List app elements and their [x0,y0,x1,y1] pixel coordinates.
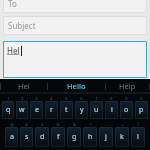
staticText: 1 [7,96,10,101]
staticText: Hel [7,45,20,56]
staticText: p [139,105,144,115]
button[interactable]: Key s [19,121,34,147]
staticText: + [121,122,124,127]
button[interactable]: Key f [50,121,66,147]
button[interactable]: Key i [104,95,119,119]
staticText: d [40,132,45,142]
staticText: t [65,105,68,115]
staticText: * [89,122,92,127]
staticText: & [73,122,76,127]
button[interactable]: Key r [44,95,59,119]
button[interactable]: Key y [74,95,89,119]
button[interactable]: To [3,0,147,13]
staticText: o [124,105,129,115]
staticText: w [19,105,25,115]
staticText: u [94,105,99,115]
staticText: 3 [35,96,38,101]
staticText: l [137,132,139,142]
button[interactable]: Key u [89,95,104,119]
button[interactable]: Key o [119,95,134,119]
staticText: y [80,105,84,115]
button[interactable]: Hello [48,79,105,93]
staticText: h [88,132,93,142]
button[interactable]: Hel [1,79,47,93]
button[interactable]: Key e [29,95,44,119]
staticText: Hello [67,81,86,91]
staticText: Subject [8,20,36,31]
staticText: # [25,122,28,127]
staticText: Help [119,81,136,91]
staticText: j [105,132,107,142]
staticText: 2 [21,96,24,101]
staticText: e [35,105,39,115]
button[interactable]: Key k [114,121,130,147]
staticText: @ [10,122,14,127]
staticText: 5 [65,96,68,101]
button[interactable]: Key j [98,121,114,147]
staticText: Hel [18,81,30,91]
button[interactable]: Key d [34,121,50,147]
staticText: 0 [140,96,143,101]
staticText: g [72,132,77,142]
button[interactable]: Key q [1,95,15,119]
button[interactable]: Key h [82,121,98,147]
staticText: r [50,105,53,115]
button[interactable]: Key p [134,95,149,119]
staticText: 4 [50,96,53,101]
staticText: i [111,105,113,115]
staticText: s [25,132,29,142]
button[interactable]: Help [106,79,149,93]
staticText: To [8,0,17,9]
staticText: k [120,132,124,142]
button[interactable]: Key t [59,95,74,119]
button[interactable]: Key g [66,121,82,147]
staticText: a [10,132,14,142]
button[interactable]: Key l [130,121,146,147]
staticText: $ [41,122,44,127]
staticText: 6 [80,96,83,101]
button[interactable]: Hel [3,41,147,78]
staticText: ( [137,122,139,127]
staticText: f [57,132,60,142]
staticText: 8 [110,96,113,101]
staticText: q [6,105,11,115]
staticText: % [56,122,60,127]
staticText: 7 [95,96,98,101]
staticText: 9 [125,96,128,101]
button[interactable]: Key w [15,95,29,119]
staticText: - [105,122,107,127]
button[interactable]: Subject [3,16,147,35]
button[interactable]: Key a [4,121,19,147]
